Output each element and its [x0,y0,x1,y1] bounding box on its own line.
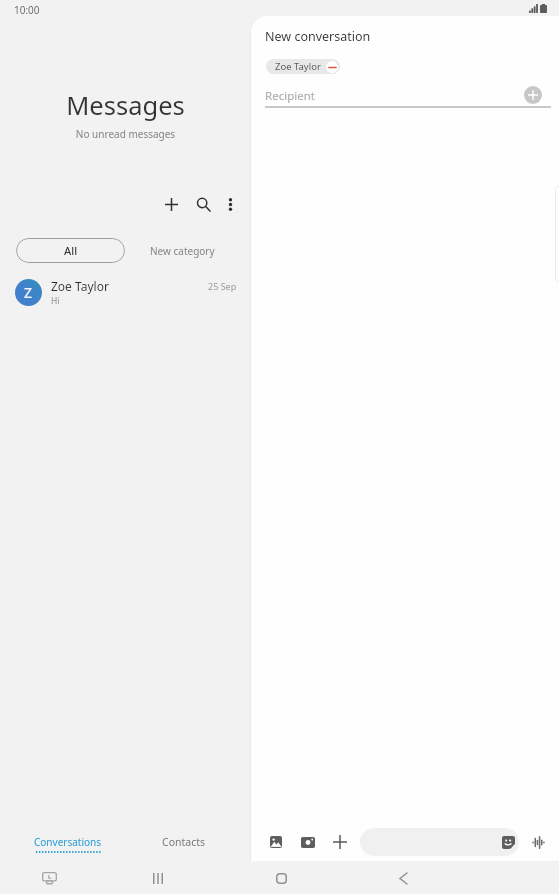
button[interactable]: Search [187,188,219,220]
staticText: Z [24,283,33,302]
button[interactable]: Add attachment [328,830,352,854]
staticText: Messages [0,88,251,123]
staticText: Hi [51,295,60,307]
button[interactable]: Conversations [10,828,126,858]
button[interactable]: More options [214,188,246,220]
staticText: 25 Sep [208,280,237,292]
button[interactable]: Z [0,275,251,310]
button[interactable]: Gallery [264,830,288,854]
staticText: Contacts [162,835,206,849]
staticText: No unread messages [0,127,251,141]
button[interactable]: Zoe Taylor [266,59,340,74]
button[interactable]: Recents [142,862,174,894]
staticText: Recipient [265,88,315,104]
button[interactable]: Voice message [526,830,550,854]
button[interactable]: New category [150,238,215,263]
staticText: Conversations [34,835,102,849]
button[interactable]: New conversation [155,188,187,220]
button[interactable]: Camera [296,830,320,854]
button[interactable]: Add recipient [524,86,542,104]
staticText: New conversation [265,28,371,45]
staticText: All [64,243,78,258]
button[interactable]: Screenshot [33,862,65,894]
button[interactable]: Back [387,862,419,894]
button[interactable]: Home [265,862,297,894]
staticText: Zoe Taylor [51,278,109,294]
button[interactable] [360,828,519,856]
button[interactable]: Contacts [140,828,227,858]
staticText: New category [150,244,215,258]
staticText: Zoe Taylor [275,60,321,73]
button[interactable]: All [16,238,125,263]
staticText: 10:00 [14,3,40,17]
